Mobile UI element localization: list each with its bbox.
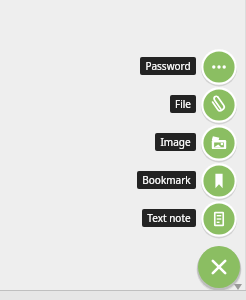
- button[interactable]: File: [200, 86, 238, 124]
- button[interactable]: Text note: [0, 209, 196, 227]
- staticText: Image: [160, 135, 191, 149]
- button[interactable]: Bookmark: [200, 162, 238, 200]
- staticText: Bookmark: [142, 173, 191, 187]
- button[interactable]: Image: [200, 124, 238, 162]
- button[interactable]: Image: [0, 133, 196, 151]
- button[interactable]: Close: [196, 244, 242, 290]
- button[interactable]: Bookmark: [0, 171, 196, 189]
- staticText: File: [175, 97, 191, 111]
- button[interactable]: Password: [0, 57, 196, 75]
- staticText: Text note: [147, 211, 191, 225]
- button[interactable]: Password: [200, 48, 238, 86]
- staticText: Password: [145, 59, 191, 73]
- button[interactable]: Text note: [200, 200, 238, 238]
- button[interactable]: File: [0, 95, 196, 113]
